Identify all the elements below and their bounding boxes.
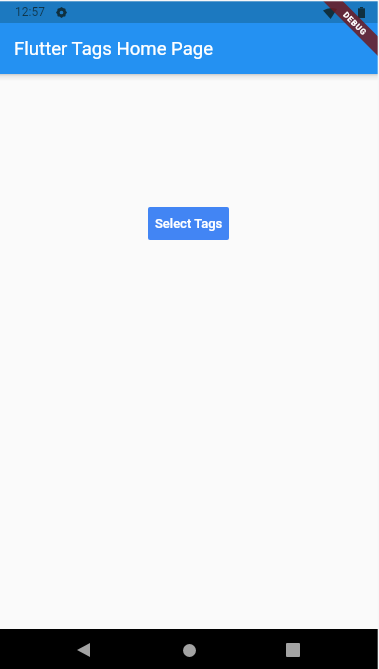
button[interactable]: Select Tags bbox=[148, 207, 229, 240]
staticText: Select Tags bbox=[155, 216, 223, 231]
button[interactable]: Home bbox=[165, 630, 213, 669]
button[interactable]: Recent apps bbox=[269, 630, 317, 669]
staticText: Flutter Tags Home Page bbox=[14, 38, 214, 60]
staticText: 12:57 bbox=[15, 5, 45, 19]
button[interactable]: Back bbox=[59, 630, 107, 669]
